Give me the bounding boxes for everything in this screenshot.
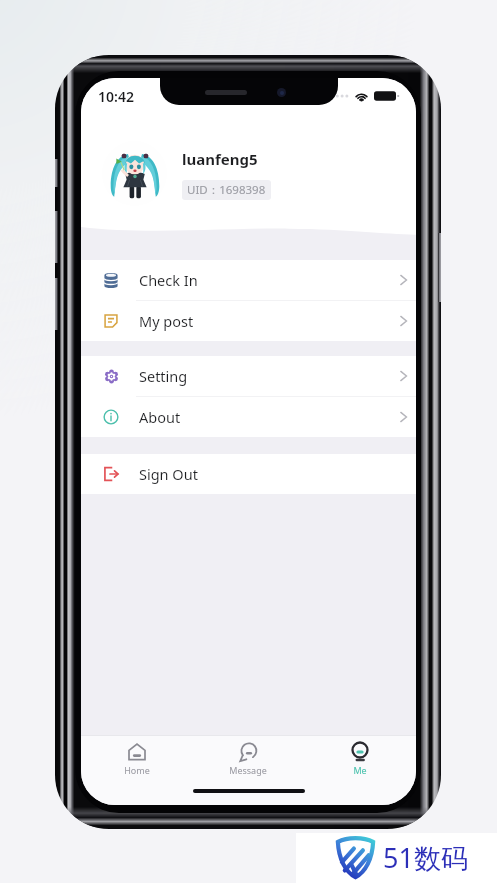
button[interactable]: Me xyxy=(304,739,416,779)
staticText: Message xyxy=(229,764,267,776)
button[interactable]: Check In xyxy=(81,260,416,300)
staticText: Home xyxy=(124,764,150,776)
button[interactable]: About xyxy=(81,397,416,437)
staticText: My post xyxy=(139,311,194,331)
button[interactable]: Home xyxy=(81,739,192,779)
staticText: Setting xyxy=(139,366,188,386)
button[interactable]: Setting xyxy=(81,356,416,396)
staticText: 10:42 xyxy=(98,87,134,106)
staticText: Sign Out xyxy=(139,464,198,484)
staticText: Me xyxy=(353,764,367,776)
button[interactable]: Avatar xyxy=(102,141,167,206)
button[interactable]: My post xyxy=(81,301,416,341)
staticText: UID：1698398 xyxy=(187,182,266,198)
button[interactable]: Sign Out xyxy=(81,454,416,494)
staticText: Check In xyxy=(139,270,198,290)
staticText: luanfeng5 xyxy=(182,149,258,169)
staticText: About xyxy=(139,407,181,427)
staticText: 51数码 xyxy=(383,839,468,876)
button[interactable]: Message xyxy=(192,739,304,779)
